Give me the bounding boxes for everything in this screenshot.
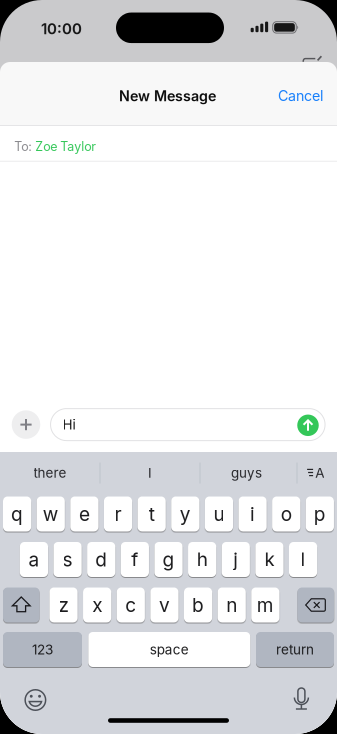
button[interactable]: v bbox=[150, 587, 178, 622]
staticText: y bbox=[180, 502, 191, 525]
button[interactable]: y bbox=[171, 496, 199, 531]
button[interactable]: Send bbox=[297, 415, 319, 436]
button[interactable]: s bbox=[53, 542, 82, 577]
staticText: i bbox=[250, 502, 255, 525]
button[interactable]: Dictate bbox=[287, 685, 315, 713]
button[interactable]: t bbox=[138, 496, 166, 531]
staticText: a bbox=[28, 548, 39, 571]
button[interactable]: space bbox=[88, 632, 250, 667]
staticText: u bbox=[213, 502, 224, 525]
staticText: o bbox=[281, 502, 292, 525]
button[interactable]: u bbox=[205, 496, 233, 531]
button[interactable]: there bbox=[4, 456, 96, 490]
button[interactable]: m bbox=[251, 587, 279, 622]
button[interactable]: d bbox=[87, 542, 115, 577]
button[interactable]: Cancel bbox=[278, 87, 323, 104]
staticText: space bbox=[150, 641, 189, 658]
button[interactable]: q bbox=[3, 496, 31, 531]
staticText: l bbox=[301, 548, 306, 571]
staticText: w bbox=[43, 502, 59, 525]
staticText: Zoe Taylor bbox=[35, 139, 96, 154]
button[interactable]: z bbox=[49, 587, 78, 622]
button[interactable]: g bbox=[154, 542, 183, 577]
staticText: b bbox=[192, 593, 204, 616]
button[interactable]: 123 bbox=[3, 632, 82, 667]
button[interactable]: w bbox=[37, 496, 65, 531]
button[interactable]: j bbox=[222, 542, 250, 577]
button[interactable]: I bbox=[104, 456, 196, 490]
staticText: j bbox=[233, 548, 238, 571]
staticText: s bbox=[63, 548, 73, 571]
button[interactable]: p bbox=[306, 496, 334, 531]
staticText: r bbox=[114, 502, 121, 525]
staticText: v bbox=[159, 593, 170, 616]
staticText: t bbox=[149, 502, 155, 525]
staticText: n bbox=[226, 593, 237, 616]
button[interactable]: guys bbox=[202, 456, 290, 490]
staticText: Cancel bbox=[278, 87, 323, 104]
staticText: A bbox=[315, 465, 324, 481]
staticText: New Message bbox=[119, 87, 216, 105]
staticText: q bbox=[11, 502, 23, 525]
button[interactable]: n bbox=[218, 587, 246, 622]
staticText: g bbox=[162, 548, 174, 571]
button[interactable]: i bbox=[238, 496, 267, 531]
button[interactable]: Message text field bbox=[51, 409, 325, 441]
button[interactable]: f bbox=[121, 542, 149, 577]
staticText: e bbox=[79, 502, 90, 525]
button[interactable]: b bbox=[184, 587, 212, 622]
staticText: m bbox=[257, 593, 274, 616]
staticText: z bbox=[58, 593, 68, 616]
button[interactable]: To: Zoe Taylor bbox=[14, 129, 337, 163]
staticText: guys bbox=[231, 465, 262, 481]
button[interactable]: a bbox=[20, 542, 48, 577]
button[interactable]: e bbox=[70, 496, 98, 531]
staticText: To: bbox=[14, 139, 35, 154]
button[interactable]: r bbox=[104, 496, 132, 531]
staticText: I bbox=[148, 465, 152, 481]
button[interactable]: Predictive input options bbox=[302, 461, 328, 487]
button[interactable]: h bbox=[188, 542, 216, 577]
button[interactable]: x bbox=[83, 587, 111, 622]
staticText: there bbox=[33, 465, 66, 481]
button[interactable]: l bbox=[289, 542, 317, 577]
staticText: h bbox=[197, 548, 208, 571]
button[interactable]: c bbox=[117, 587, 145, 622]
staticText: return bbox=[276, 641, 314, 658]
button[interactable]: Emoji bbox=[21, 686, 49, 714]
button[interactable]: k bbox=[255, 542, 283, 577]
button[interactable]: return bbox=[256, 632, 334, 667]
staticText: k bbox=[264, 548, 274, 571]
button[interactable]: Delete bbox=[297, 587, 334, 622]
staticText: p bbox=[314, 502, 326, 525]
staticText: x bbox=[92, 593, 102, 616]
staticText: 10:00 bbox=[41, 20, 82, 38]
button[interactable]: o bbox=[272, 496, 300, 531]
staticText: c bbox=[125, 593, 136, 616]
staticText: Hi bbox=[63, 416, 76, 433]
button[interactable]: Shift bbox=[3, 587, 39, 622]
button[interactable]: Add attachment bbox=[12, 411, 40, 439]
staticText: 123 bbox=[32, 641, 53, 658]
staticText: f bbox=[131, 548, 138, 571]
staticText: d bbox=[95, 548, 107, 571]
